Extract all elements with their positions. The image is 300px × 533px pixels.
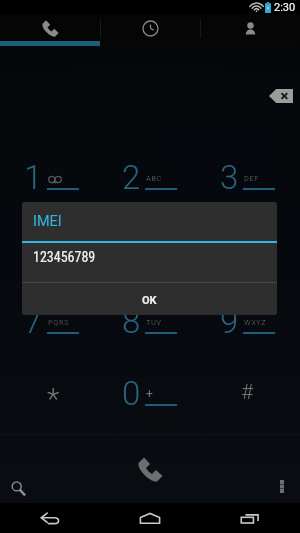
staticText: 2 bbox=[122, 158, 141, 197]
button[interactable]: Backspace bbox=[266, 86, 296, 106]
staticText: WXYZ bbox=[244, 318, 267, 327]
staticText: ABC bbox=[146, 174, 162, 183]
staticText: GHI bbox=[48, 246, 62, 255]
button[interactable]: Call bbox=[123, 446, 177, 492]
button[interactable]: 3 bbox=[212, 146, 290, 206]
button[interactable]: Home bbox=[100, 503, 200, 533]
staticText: 3 bbox=[220, 158, 239, 197]
staticText: 1 bbox=[24, 158, 43, 197]
button[interactable]: Back bbox=[0, 503, 100, 533]
staticText: + bbox=[146, 387, 153, 401]
staticText: 5 bbox=[122, 230, 141, 269]
staticText: DEF bbox=[244, 174, 259, 183]
staticText: 0 bbox=[122, 374, 141, 413]
staticText: 8 bbox=[122, 302, 141, 341]
button[interactable]: Call log bbox=[100, 15, 200, 41]
staticText: 7 bbox=[24, 302, 43, 341]
button[interactable]: 5 bbox=[114, 218, 192, 278]
button[interactable]: * bbox=[16, 362, 94, 422]
button[interactable]: 4 bbox=[16, 218, 94, 278]
staticText: 4 bbox=[24, 230, 43, 269]
staticText: 9 bbox=[220, 302, 239, 341]
staticText: 2:30 bbox=[274, 1, 296, 14]
button[interactable]: OK bbox=[22, 283, 277, 315]
button[interactable]: 6 bbox=[212, 218, 290, 278]
staticText: OK bbox=[142, 294, 157, 307]
button[interactable]: 7 bbox=[16, 290, 94, 350]
staticText: IMEI bbox=[33, 213, 62, 230]
button[interactable]: Dialer bbox=[0, 15, 100, 41]
button[interactable]: 8 bbox=[114, 290, 192, 350]
staticText: * bbox=[47, 382, 60, 416]
button[interactable]: 1 bbox=[16, 146, 94, 206]
staticText: TUV bbox=[146, 318, 162, 327]
button[interactable]: 9 bbox=[212, 290, 290, 350]
button[interactable]: More options bbox=[272, 476, 292, 496]
staticText: # bbox=[241, 380, 254, 405]
button[interactable]: Search bbox=[6, 476, 30, 500]
button[interactable]: Contacts bbox=[200, 15, 300, 41]
button[interactable]: 2 bbox=[114, 146, 192, 206]
button[interactable]: # bbox=[212, 362, 290, 422]
staticText: 123456789 bbox=[33, 249, 96, 265]
button[interactable]: Recents bbox=[200, 503, 300, 533]
staticText: 6 bbox=[220, 230, 239, 269]
button[interactable]: 0 bbox=[114, 362, 192, 422]
staticText: PQRS bbox=[48, 318, 69, 327]
